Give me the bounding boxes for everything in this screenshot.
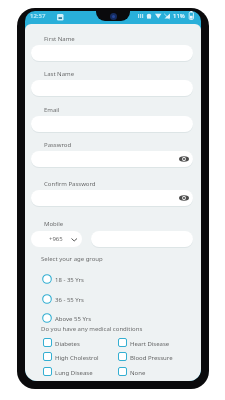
button[interactable]: Above 55 Yrs xyxy=(42,312,117,324)
staticText: Lung Disease xyxy=(55,369,93,377)
staticText: 11% xyxy=(173,12,185,20)
staticText: 36 - 55 Yrs xyxy=(55,296,84,304)
button[interactable] xyxy=(179,155,189,163)
button[interactable]: Lung Disease xyxy=(43,366,113,378)
staticText: First Name xyxy=(44,35,75,43)
button[interactable]: Blood Pressure xyxy=(118,351,188,363)
staticText: Email xyxy=(44,106,60,114)
staticText: 18 - 35 Yrs xyxy=(55,276,84,284)
staticText: +965 xyxy=(49,235,63,243)
button[interactable]: 18 - 35 Yrs xyxy=(42,273,117,285)
staticText: 12:57 xyxy=(30,12,46,20)
staticText: Select your age group xyxy=(41,255,103,263)
button[interactable]: Heart Disease xyxy=(118,337,188,349)
staticText: Heart Disease xyxy=(130,340,170,348)
staticText: Do you have any medical conditions xyxy=(41,325,143,333)
button[interactable]: Diabetes xyxy=(43,337,113,349)
staticText: Confirm Password xyxy=(44,180,96,188)
button[interactable]: +965 xyxy=(31,231,82,247)
button[interactable]: None xyxy=(118,366,188,378)
button[interactable] xyxy=(31,151,193,167)
button[interactable] xyxy=(179,194,189,202)
staticText: None xyxy=(130,369,146,377)
button[interactable] xyxy=(91,231,193,247)
staticText: Diabetes xyxy=(55,340,80,348)
button[interactable]: 36 - 55 Yrs xyxy=(42,293,117,305)
staticText: Above 55 Yrs xyxy=(55,315,92,323)
staticText: Mobile xyxy=(44,220,64,228)
button[interactable]: High Cholestrol xyxy=(43,351,113,363)
staticText: Blood Pressure xyxy=(130,354,173,362)
button[interactable] xyxy=(31,190,193,206)
staticText: Last Name xyxy=(44,70,75,78)
staticText: High Cholestrol xyxy=(55,354,99,362)
staticText: Passwrod xyxy=(44,141,72,149)
